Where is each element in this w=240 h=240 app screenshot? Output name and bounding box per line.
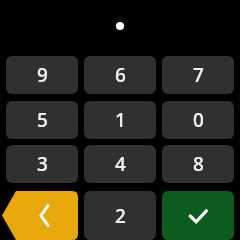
staticText: 9 [37, 62, 48, 88]
button[interactable]: 2 [84, 191, 156, 240]
staticText: 7 [193, 62, 204, 88]
button[interactable]: 9 [6, 56, 78, 94]
staticText: 6 [115, 62, 126, 88]
button[interactable]: 1 [84, 101, 156, 139]
button[interactable]: 6 [84, 56, 156, 94]
staticText: 2 [115, 203, 126, 229]
button[interactable]: Confirm [162, 191, 234, 240]
button[interactable]: 5 [6, 101, 78, 139]
staticText: 4 [115, 151, 126, 177]
button[interactable]: 0 [162, 101, 234, 139]
staticText: 0 [193, 107, 204, 133]
staticText: 1 [115, 107, 126, 133]
button[interactable]: 3 [6, 145, 78, 183]
button[interactable]: 4 [84, 145, 156, 183]
button[interactable]: 8 [162, 145, 234, 183]
staticText: 8 [193, 151, 204, 177]
staticText: 3 [37, 151, 48, 177]
button[interactable]: 7 [162, 56, 234, 94]
staticText: 5 [37, 107, 48, 133]
button[interactable]: Back [2, 191, 78, 240]
